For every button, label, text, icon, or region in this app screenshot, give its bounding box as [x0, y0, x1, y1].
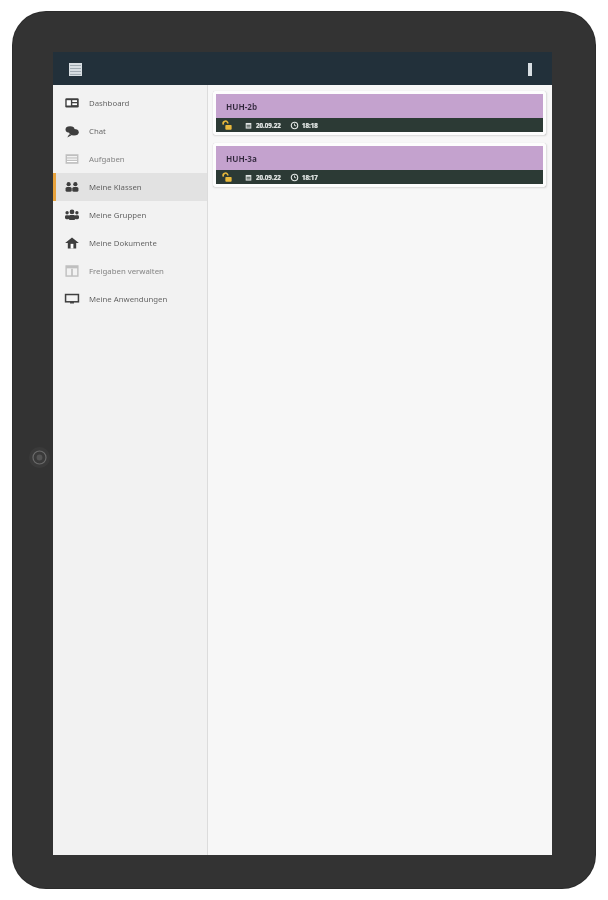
button[interactable]: Meine Gruppen [53, 201, 208, 229]
staticText: Meine Gruppen [89, 210, 147, 221]
staticText: Dashboard [89, 98, 130, 109]
staticText: Chat [89, 126, 106, 137]
button[interactable]: Chat [53, 117, 208, 145]
staticText: Meine Anwendungen [89, 294, 168, 305]
staticText: HUH-2b [226, 101, 258, 112]
staticText: Meine Dokumente [89, 238, 157, 249]
button[interactable]: Meine Klassen [53, 173, 208, 201]
staticText: Meine Klassen [89, 182, 142, 193]
staticText: 20.09.22 [256, 173, 281, 181]
staticText: Aufgaben [89, 154, 125, 165]
button[interactable]: Dashboard [53, 89, 208, 117]
button[interactable]: Meine Anwendungen [53, 285, 208, 313]
button[interactable]: Aufgaben [53, 145, 208, 173]
button[interactable]: More options [520, 59, 540, 79]
staticText: HUH-3a [226, 153, 257, 164]
button[interactable]: HUH-2b [213, 91, 546, 135]
staticText: 20.09.22 [256, 121, 281, 129]
button[interactable]: Meine Dokumente [53, 229, 208, 257]
button[interactable]: Freigaben verwalten [53, 257, 208, 285]
button[interactable]: HUH-3a [213, 143, 546, 187]
staticText: Freigaben verwalten [89, 266, 164, 277]
staticText: 18:18 [302, 121, 318, 129]
staticText: 18:17 [302, 173, 318, 181]
other: Unlocked [223, 173, 232, 182]
button[interactable]: Menu [65, 59, 85, 79]
button[interactable]: Side button [29, 447, 50, 468]
other: Unlocked [223, 121, 232, 130]
